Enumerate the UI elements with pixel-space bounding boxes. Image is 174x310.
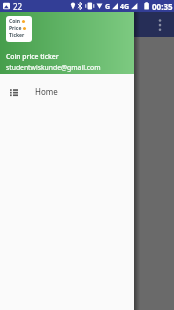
button[interactable]: Home (0, 80, 134, 103)
staticText: Ticker (9, 32, 25, 39)
staticText: Price (9, 25, 22, 32)
staticText: studentwiskunde@gmail.com (6, 63, 101, 72)
staticText: 00:35 (152, 1, 173, 12)
staticText: Coin price ticker (6, 52, 59, 61)
staticText: 4G (120, 2, 130, 12)
staticText: Coin (9, 18, 21, 25)
staticText: G (105, 2, 111, 12)
staticText: 22 (13, 1, 23, 12)
staticText: Home (35, 86, 58, 97)
